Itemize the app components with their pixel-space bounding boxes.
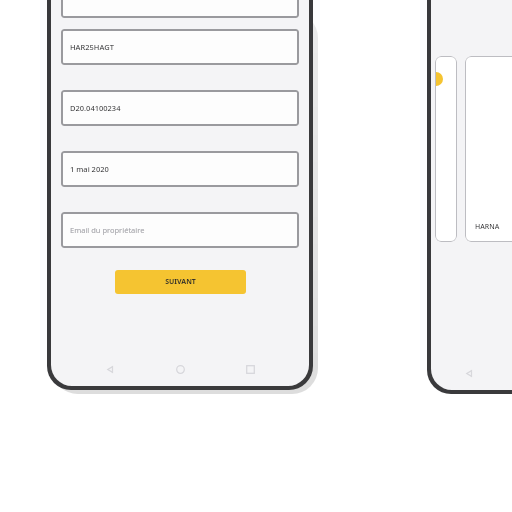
staticText: SUIVANT [165,277,196,287]
button[interactable]: 1 mai 2020 [61,151,299,187]
button[interactable]: Home [169,358,191,380]
staticText: Email du propriétaire [70,225,145,235]
button[interactable]: Email du propriétaire [61,212,299,248]
button[interactable]: D20.04100234 [61,90,299,126]
button[interactable] [61,0,299,18]
staticText: 1 mai 2020 [70,164,109,174]
button[interactable]: HARNA [465,56,512,242]
staticText: HARNA [475,222,500,232]
button[interactable]: Recents [239,358,261,380]
staticText: HAR25HAGT [70,42,114,52]
button[interactable]: Back [99,358,121,380]
button[interactable]: SUIVANT [115,270,246,294]
button[interactable]: Back [458,362,480,384]
button[interactable]: HAR25HAGT [61,29,299,65]
button[interactable] [435,56,457,242]
staticText: D20.04100234 [70,103,121,113]
